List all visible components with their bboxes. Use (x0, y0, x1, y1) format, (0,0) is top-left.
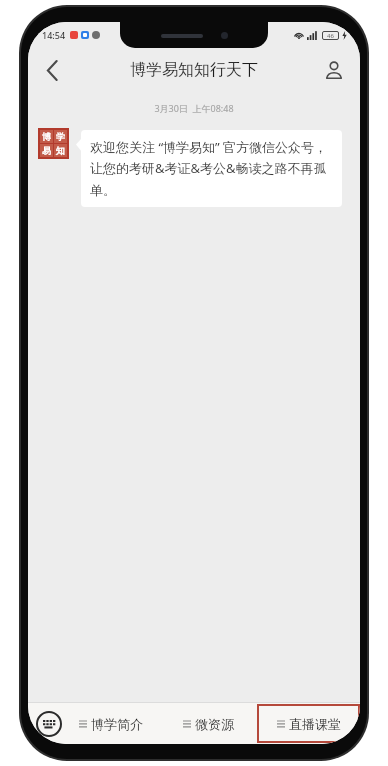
button[interactable]: Profile (314, 50, 354, 90)
button[interactable]: Back (32, 50, 72, 90)
staticText: 直播课堂 (289, 716, 341, 732)
button[interactable]: 直播课堂 (257, 704, 360, 743)
staticText: 微资源 (195, 716, 234, 732)
button[interactable]: 博学简介 (62, 703, 160, 744)
staticText: 易 (42, 145, 51, 156)
staticText: 知 (56, 145, 65, 156)
staticText: 3月30日 上午08:48 (28, 102, 360, 114)
button[interactable]: Avatar (38, 128, 69, 159)
staticText: 博 (42, 131, 51, 142)
button[interactable]: 微资源 (160, 703, 257, 744)
staticText: 学 (56, 131, 65, 142)
staticText: 46 (327, 32, 334, 40)
button[interactable]: 欢迎您关注 “博学易知” 官方微信公众号，让您的考研&考证&考公&畅读之路不再孤… (81, 130, 342, 207)
staticText: 博学易知知行天下 (130, 60, 258, 80)
staticText: 14:54 (42, 29, 66, 41)
staticText: 欢迎您关注 “博学易知” 官方微信公众号，让您的考研&考证&考公&畅读之路不再孤… (90, 138, 333, 199)
staticText: 博学简介 (91, 716, 143, 732)
button[interactable]: Keyboard (36, 711, 62, 737)
